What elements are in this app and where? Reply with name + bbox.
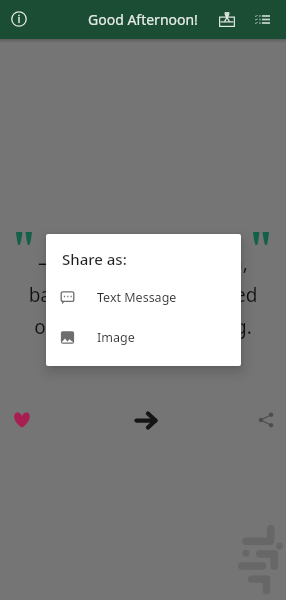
button[interactable]: Info — [5, 5, 33, 33]
staticText: Good Afternoon! — [88, 10, 198, 29]
staticText: Image — [97, 329, 135, 346]
button[interactable]: Text Message — [46, 277, 241, 317]
staticText: Text Message — [97, 289, 177, 306]
button[interactable]: Gifts — [213, 5, 241, 33]
button[interactable]: Favorite — [2, 400, 42, 440]
button[interactable]: Menu — [248, 5, 276, 33]
staticText: – Don't seek perfection, balance is what… — [8, 250, 278, 340]
staticText: Share as: — [62, 249, 127, 269]
button[interactable]: Image — [46, 317, 241, 357]
button[interactable]: Share — [246, 400, 286, 440]
button[interactable]: Next quote — [126, 400, 166, 440]
